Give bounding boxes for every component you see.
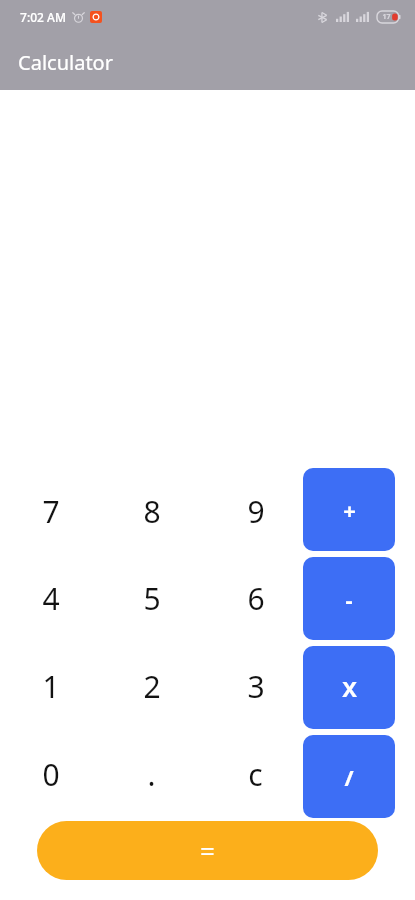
button[interactable]: . [101,730,202,818]
button[interactable]: 6 [202,555,303,642]
button[interactable]: Plus [303,468,395,551]
staticText: 3 [247,666,265,707]
staticText: 17 [382,12,391,22]
button[interactable]: 8 [101,468,202,555]
button[interactable]: 3 [202,642,303,730]
button[interactable]: 5 [101,555,202,642]
button[interactable]: Multiply [303,646,395,729]
button[interactable]: 7 [0,468,101,555]
staticText: - [345,584,353,614]
button[interactable]: 1 [0,642,101,730]
staticText: 6 [247,578,265,619]
button[interactable]: = [37,821,378,880]
button[interactable]: 0 [0,730,101,818]
button[interactable]: Minus [303,557,395,640]
staticText: 0 [42,754,60,795]
staticText: Calculator [18,49,113,76]
staticText: X [342,673,357,703]
button[interactable]: c [202,730,303,818]
button[interactable]: 4 [0,555,101,642]
staticText: 4 [42,578,60,619]
staticText: 7 [42,491,60,532]
staticText: + [343,495,356,525]
button[interactable]: 9 [202,468,303,555]
staticText: 5 [143,578,161,619]
staticText: 1 [42,666,60,707]
staticText: = [200,833,215,868]
staticText: 8 [143,491,161,532]
staticText: 2 [143,666,161,707]
staticText: / [344,762,354,792]
staticText: 7:02 AM [20,9,66,25]
staticText: 9 [247,491,265,532]
button[interactable]: Divide [303,735,395,818]
staticText: c [248,754,263,795]
staticText: . [147,754,156,795]
button[interactable]: 2 [101,642,202,730]
